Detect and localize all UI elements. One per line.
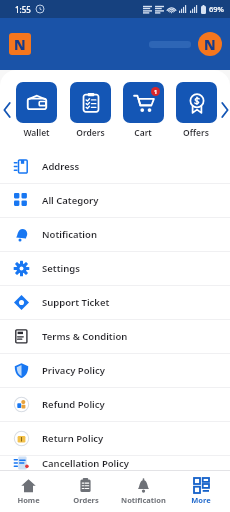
button[interactable]: Profile <box>198 32 222 56</box>
staticText: Refund Policy <box>42 398 105 411</box>
button[interactable]: More <box>172 471 230 512</box>
staticText: Support Ticket <box>42 296 110 309</box>
button[interactable]: Notification <box>0 218 230 251</box>
button[interactable]: Notification <box>114 471 172 512</box>
button[interactable]: Privacy Policy <box>0 354 230 387</box>
staticText: Return Policy <box>42 432 104 445</box>
button[interactable]: 1 <box>121 70 165 150</box>
staticText: Address <box>42 160 80 173</box>
button[interactable]: Refund Policy <box>0 388 230 421</box>
button[interactable]: Home <box>0 471 57 512</box>
staticText: Cart <box>134 127 152 139</box>
button[interactable]: Settings <box>0 252 230 285</box>
button[interactable]: All Category <box>0 184 230 217</box>
staticText: 69% <box>209 4 224 14</box>
staticText: All Category <box>42 194 99 207</box>
staticText: Notification <box>121 495 166 505</box>
button[interactable]: Cancellation Policy <box>0 456 230 470</box>
staticText: Privacy Policy <box>42 364 105 377</box>
staticText: Orders <box>73 495 99 505</box>
button[interactable]: Scroll left <box>0 70 14 150</box>
staticText: 1:55 <box>15 4 31 15</box>
button[interactable]: Scroll right <box>218 70 230 150</box>
staticText: Terms & Condition <box>42 330 128 343</box>
staticText: N <box>14 35 26 54</box>
button[interactable]: Orders <box>57 471 114 512</box>
button[interactable]: Address <box>0 150 230 183</box>
button[interactable]: Wallet <box>14 70 59 150</box>
button[interactable]: Return Policy <box>0 422 230 455</box>
staticText: N <box>204 35 216 54</box>
staticText: Cancellation Policy <box>42 457 129 470</box>
staticText: Wallet <box>23 127 50 139</box>
staticText: More <box>191 495 211 505</box>
staticText: 1 <box>154 88 158 95</box>
staticText: Orders <box>76 127 105 139</box>
button[interactable]: Orders <box>68 70 112 150</box>
button[interactable]: App logo <box>9 33 31 55</box>
button[interactable]: Terms & Condition <box>0 320 230 353</box>
staticText: Settings <box>42 262 80 275</box>
staticText: Notification <box>42 228 97 241</box>
staticText: Offers <box>183 127 209 139</box>
button[interactable]: Offers <box>174 70 218 150</box>
staticText: Home <box>17 495 40 505</box>
button[interactable]: Support Ticket <box>0 286 230 319</box>
